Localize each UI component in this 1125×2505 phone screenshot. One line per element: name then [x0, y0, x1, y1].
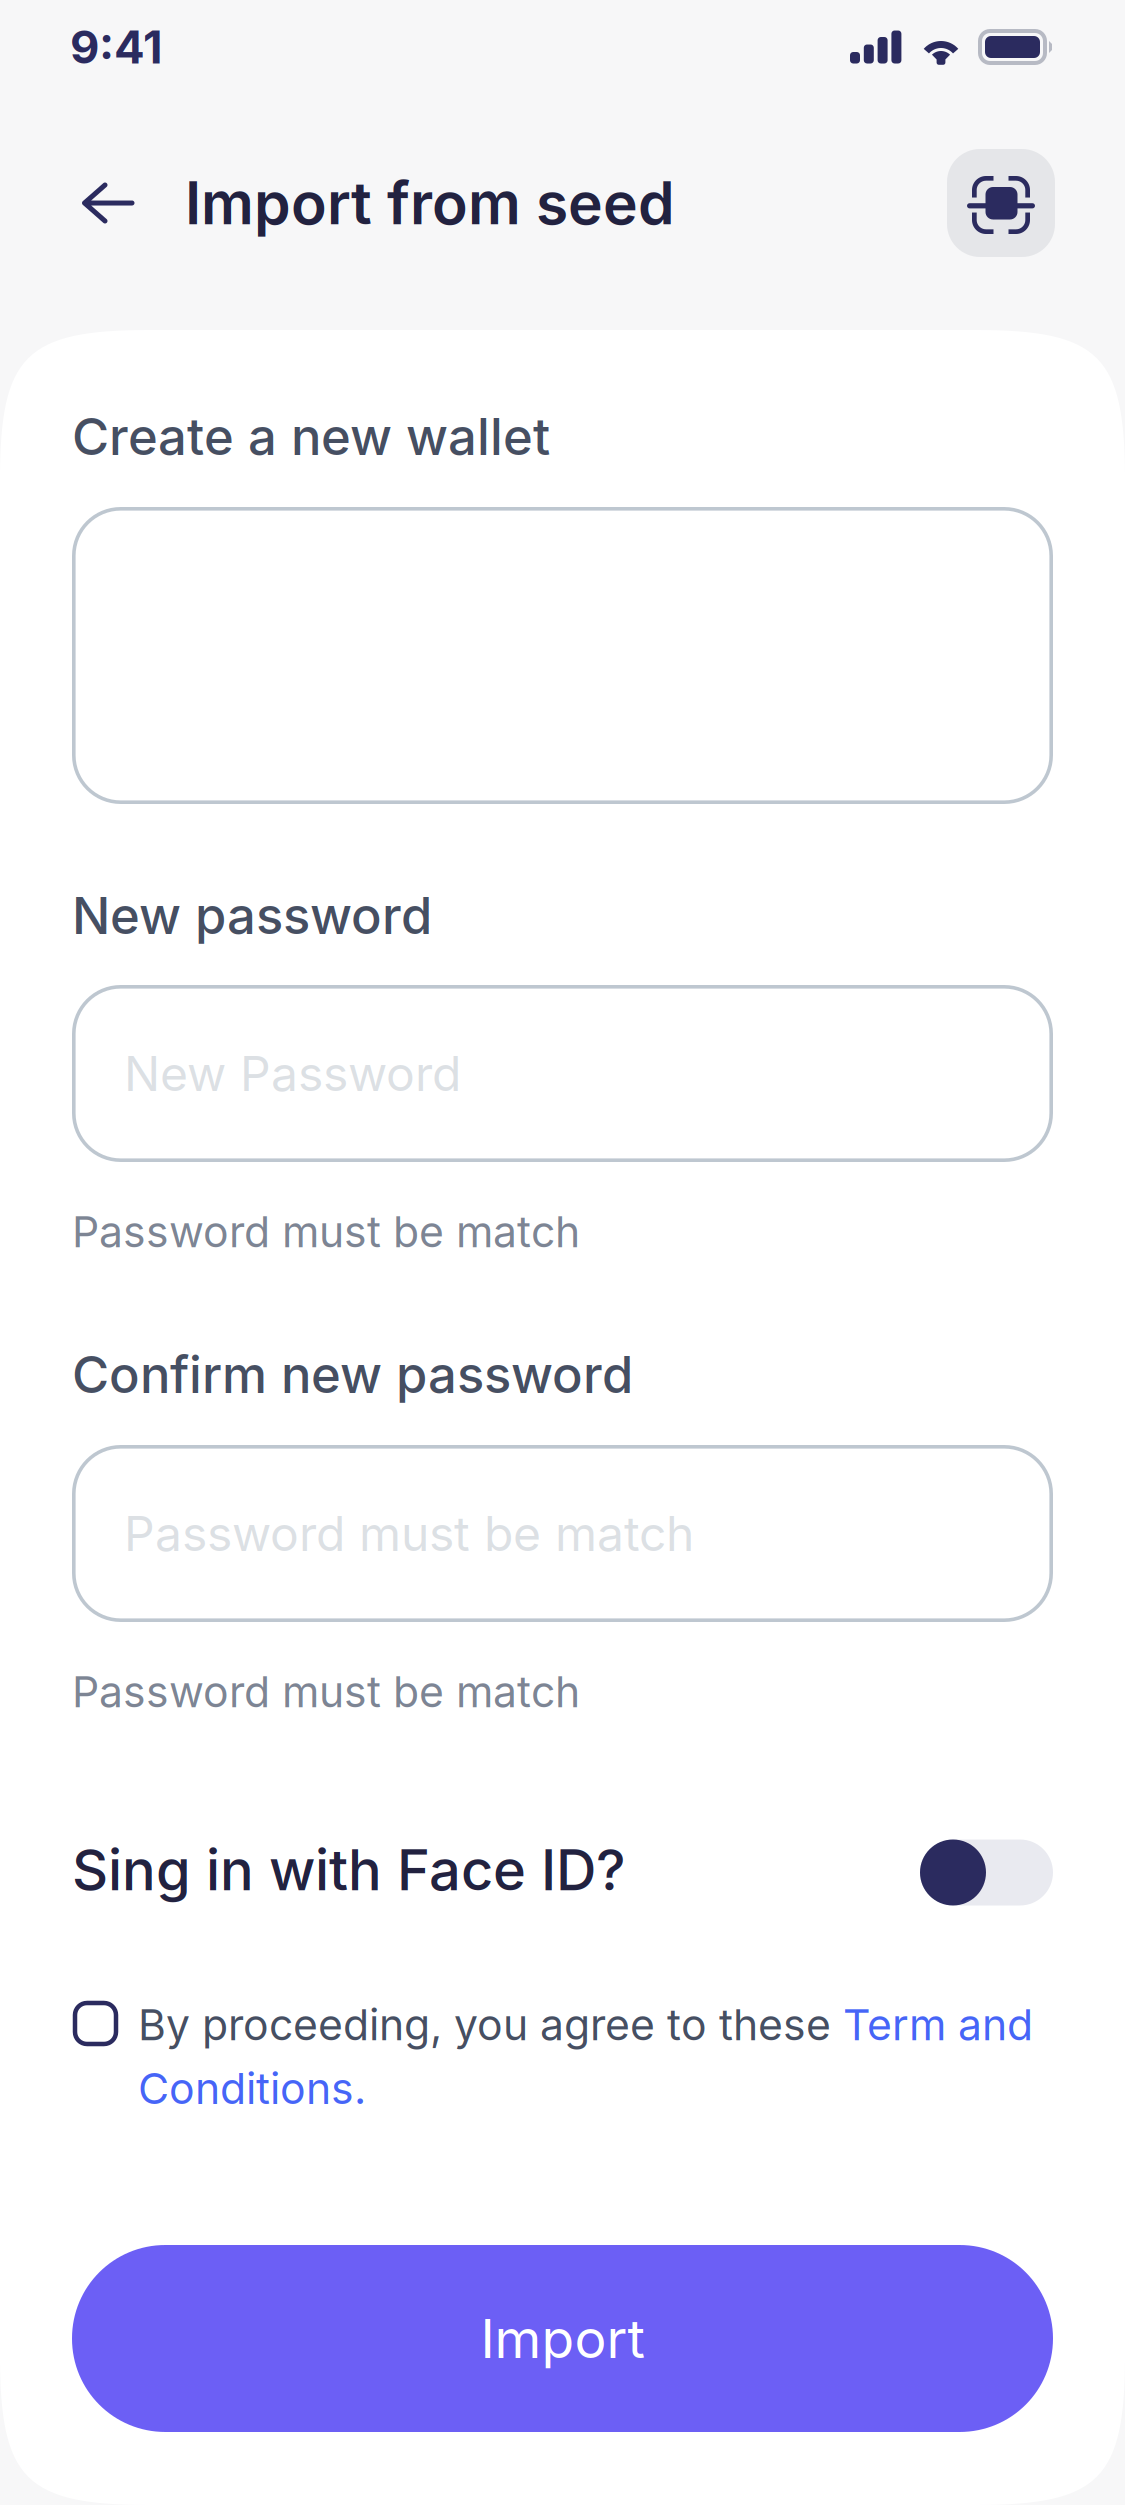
staticText: Password must be match [72, 1206, 580, 1258]
staticText: 9:41 [70, 20, 163, 74]
button[interactable]: Term and [843, 1999, 1033, 2051]
staticText: New Password [124, 1044, 461, 1103]
staticText: Create a new wallet [72, 406, 550, 467]
staticText: Sing in with Face ID? [72, 1836, 626, 1904]
button[interactable]: Import [72, 2245, 1053, 2432]
staticText: Import from seed [185, 167, 675, 238]
staticText: New password [72, 885, 432, 946]
button[interactable]: Conditions. [138, 2063, 366, 2114]
staticText: Password must be match [72, 1666, 580, 1718]
button[interactable]: Back [70, 155, 175, 251]
staticText: Conditions. [138, 2063, 366, 2114]
button[interactable]: Agree to terms and conditions [72, 1999, 116, 2044]
staticText: By proceeding, you agree to these [138, 1999, 843, 2051]
staticText: Confirm new password [72, 1344, 633, 1405]
button[interactable]: Scan QR code [947, 149, 1055, 257]
staticText: Import [480, 2306, 644, 2371]
staticText: Password must be match [124, 1504, 694, 1563]
button[interactable]: Sign in with Face ID [920, 1834, 1053, 1905]
staticText: Term and [843, 1999, 1033, 2051]
